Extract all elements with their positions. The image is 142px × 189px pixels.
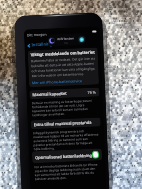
staticText: Inbyggd dynamisk programvara och maskinv…: [33, 128, 100, 151]
staticText: 76 %: [87, 89, 96, 95]
staticText: För att minska batteriets åldrande lär i…: [34, 162, 101, 181]
staticText: Wifi/Tandem: [57, 36, 75, 41]
button[interactable]: Live Activity: [47, 33, 86, 46]
staticText: Viktigt meddelande om batteriet: [31, 50, 95, 57]
button[interactable]: Optimaliserad batteriladdning på: [92, 150, 99, 159]
staticText: Batteriets hälsa är nedsatt. Det går int…: [31, 57, 96, 78]
button[interactable]: Optimaliserad batteriladdning: [32, 148, 102, 163]
staticText: nu: [64, 41, 68, 44]
staticText: Ditt morgon: [27, 32, 47, 37]
button[interactable]: Viktigt meddelande om batteriet: [28, 47, 99, 87]
staticText: Detta är en mätning av batterikapacitete…: [32, 98, 98, 117]
button[interactable]: Maximal kapacitet: [29, 87, 100, 99]
staticText: Optimaliserad batteriladdning: [35, 153, 92, 160]
staticText: Extra tillval maximal prestanda: [34, 120, 92, 127]
staticText: Maximal kapacitet: [32, 91, 68, 97]
button[interactable]: Extra tillval maximal prestanda: [30, 117, 101, 129]
staticText: Inställningar: [31, 41, 56, 48]
button[interactable]: Mer om iPhone-batteriservice: [32, 78, 83, 85]
button[interactable]: Inställningar: [25, 40, 57, 49]
